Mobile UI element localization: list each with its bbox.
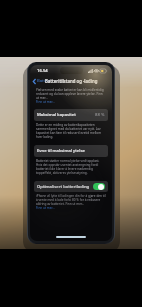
button[interactable]: Optimalisert batterilading bbox=[34, 181, 108, 192]
button[interactable]: Optimalisert batterilading bbox=[93, 183, 105, 190]
staticText: Batteritilstand og -lading bbox=[45, 78, 98, 84]
other: Back bbox=[33, 79, 36, 84]
staticText: 16.54 bbox=[37, 68, 48, 74]
staticText: Optimalisert batterilading bbox=[37, 184, 90, 190]
button[interactable]: Maksimal kapasitet bbox=[34, 109, 108, 121]
staticText: Batteri bbox=[37, 78, 51, 84]
staticText: Evne til maksimal ytelse bbox=[37, 148, 85, 154]
button[interactable]: Evne til maksimal ytelse bbox=[34, 145, 108, 157]
staticText: Batteriet støtter normal ytelse ved topp… bbox=[36, 159, 106, 175]
button[interactable]: Finn ut mer... bbox=[36, 100, 55, 104]
button[interactable]: Finn ut mer... bbox=[36, 206, 55, 210]
staticText: Ytelsen med svake batterier kan bli midl… bbox=[36, 88, 106, 100]
button[interactable]: Back bbox=[30, 77, 54, 85]
staticText: 88 % bbox=[95, 112, 105, 118]
staticText: Dette er en måling av batterikapasiteten… bbox=[36, 123, 106, 139]
staticText: iPhone vil lytte til ladingen din for å … bbox=[36, 194, 106, 206]
staticText: Maksimal kapasitet bbox=[37, 112, 76, 118]
